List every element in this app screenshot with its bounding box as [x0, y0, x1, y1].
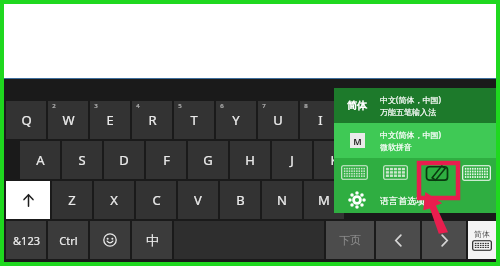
button[interactable]: L — [356, 141, 396, 179]
button[interactable]: Handwriting — [416, 158, 457, 187]
staticText: W — [62, 111, 75, 129]
button[interactable]: Previous page — [376, 221, 420, 259]
staticText: 语言首选项 — [380, 195, 425, 206]
staticText: G — [203, 151, 213, 169]
staticText: 万能五笔输入法 — [380, 107, 436, 117]
staticText: H — [245, 151, 255, 169]
staticText: K — [330, 151, 339, 169]
staticText: F — [163, 151, 170, 169]
button[interactable]: H — [230, 141, 270, 179]
button[interactable]: 7 — [258, 101, 298, 139]
button[interactable]: X — [94, 181, 134, 219]
staticText: D — [119, 151, 129, 169]
button[interactable]: D — [104, 141, 144, 179]
button[interactable]: 8 — [300, 101, 340, 139]
staticText: 9 — [346, 102, 350, 110]
staticText: M — [353, 135, 362, 147]
staticText: Ctrl — [59, 233, 78, 248]
staticText: 3 — [94, 102, 98, 110]
button[interactable]: 0 — [384, 101, 424, 139]
staticText: E — [106, 111, 114, 129]
staticText: P — [400, 111, 408, 129]
staticText: Q — [21, 111, 32, 129]
button[interactable]: 2 — [48, 101, 88, 139]
staticText: S — [78, 151, 86, 169]
button[interactable]: Shift — [6, 181, 50, 219]
button[interactable]: J — [272, 141, 312, 179]
button[interactable]: V — [178, 181, 218, 219]
button[interactable]: B — [220, 181, 260, 219]
staticText: R — [148, 111, 157, 129]
staticText: 简体 — [474, 229, 490, 239]
button[interactable]: C — [136, 181, 176, 219]
button[interactable]: 9 — [342, 101, 382, 139]
staticText: J — [290, 151, 294, 169]
button[interactable]: A — [20, 141, 60, 179]
button[interactable]: 简体 — [334, 88, 496, 123]
staticText: 4 — [136, 102, 140, 110]
button[interactable]: Ctrl — [48, 221, 88, 259]
button[interactable]: S — [62, 141, 102, 179]
button[interactable]: Q — [6, 101, 46, 139]
staticText: M — [318, 191, 330, 209]
button[interactable]: 4 — [132, 101, 172, 139]
staticText: X — [110, 191, 118, 209]
button[interactable]: F — [146, 141, 186, 179]
button[interactable]: Z — [52, 181, 92, 219]
staticText: A — [36, 151, 45, 169]
button[interactable]: Keyboard layout — [334, 158, 375, 187]
button[interactable]: 简体 — [468, 221, 496, 259]
staticText: O — [357, 111, 368, 129]
staticText: B — [236, 191, 245, 209]
staticText: U — [273, 111, 283, 129]
staticText: 5 — [178, 102, 182, 110]
button[interactable]: Input options — [375, 158, 416, 187]
button[interactable]: M — [304, 181, 344, 219]
staticText: Z — [68, 191, 76, 209]
staticText: N — [277, 191, 287, 209]
button[interactable]: Full keyboard — [457, 158, 496, 187]
staticText: C — [152, 191, 161, 209]
staticText: 6 — [220, 102, 224, 110]
button[interactable]: G — [188, 141, 228, 179]
staticText: 中文(简体，中国) — [380, 94, 441, 105]
staticText: 8 — [304, 102, 308, 110]
button[interactable]: 5 — [174, 101, 214, 139]
staticText: I — [318, 111, 323, 129]
staticText: 中 — [146, 232, 159, 248]
staticText: T — [190, 111, 198, 129]
staticText: V — [194, 191, 202, 209]
staticText: 简体 — [347, 99, 367, 112]
staticText: 下页 — [339, 233, 361, 247]
button[interactable]: 3 — [90, 101, 130, 139]
staticText: Y — [232, 111, 240, 129]
button[interactable]: 下页 — [326, 221, 374, 259]
button[interactable]: 中 — [132, 221, 172, 259]
button[interactable]: 语言首选项 — [334, 187, 496, 213]
button[interactable]: &123 — [6, 221, 46, 259]
staticText: 7 — [262, 102, 266, 110]
staticText: 2 — [52, 102, 56, 110]
staticText: L — [373, 151, 380, 169]
staticText: 0 — [388, 102, 392, 110]
staticText: &123 — [13, 233, 40, 248]
button[interactable]: K — [314, 141, 354, 179]
button[interactable]: M — [334, 123, 496, 158]
button[interactable]: N — [262, 181, 302, 219]
staticText: 微软拼音 — [380, 142, 412, 152]
button[interactable]: Next page — [422, 221, 466, 259]
button[interactable]: Emoji — [90, 221, 130, 259]
button[interactable]: 6 — [216, 101, 256, 139]
staticText: 中文(简体，中国) — [380, 129, 441, 140]
